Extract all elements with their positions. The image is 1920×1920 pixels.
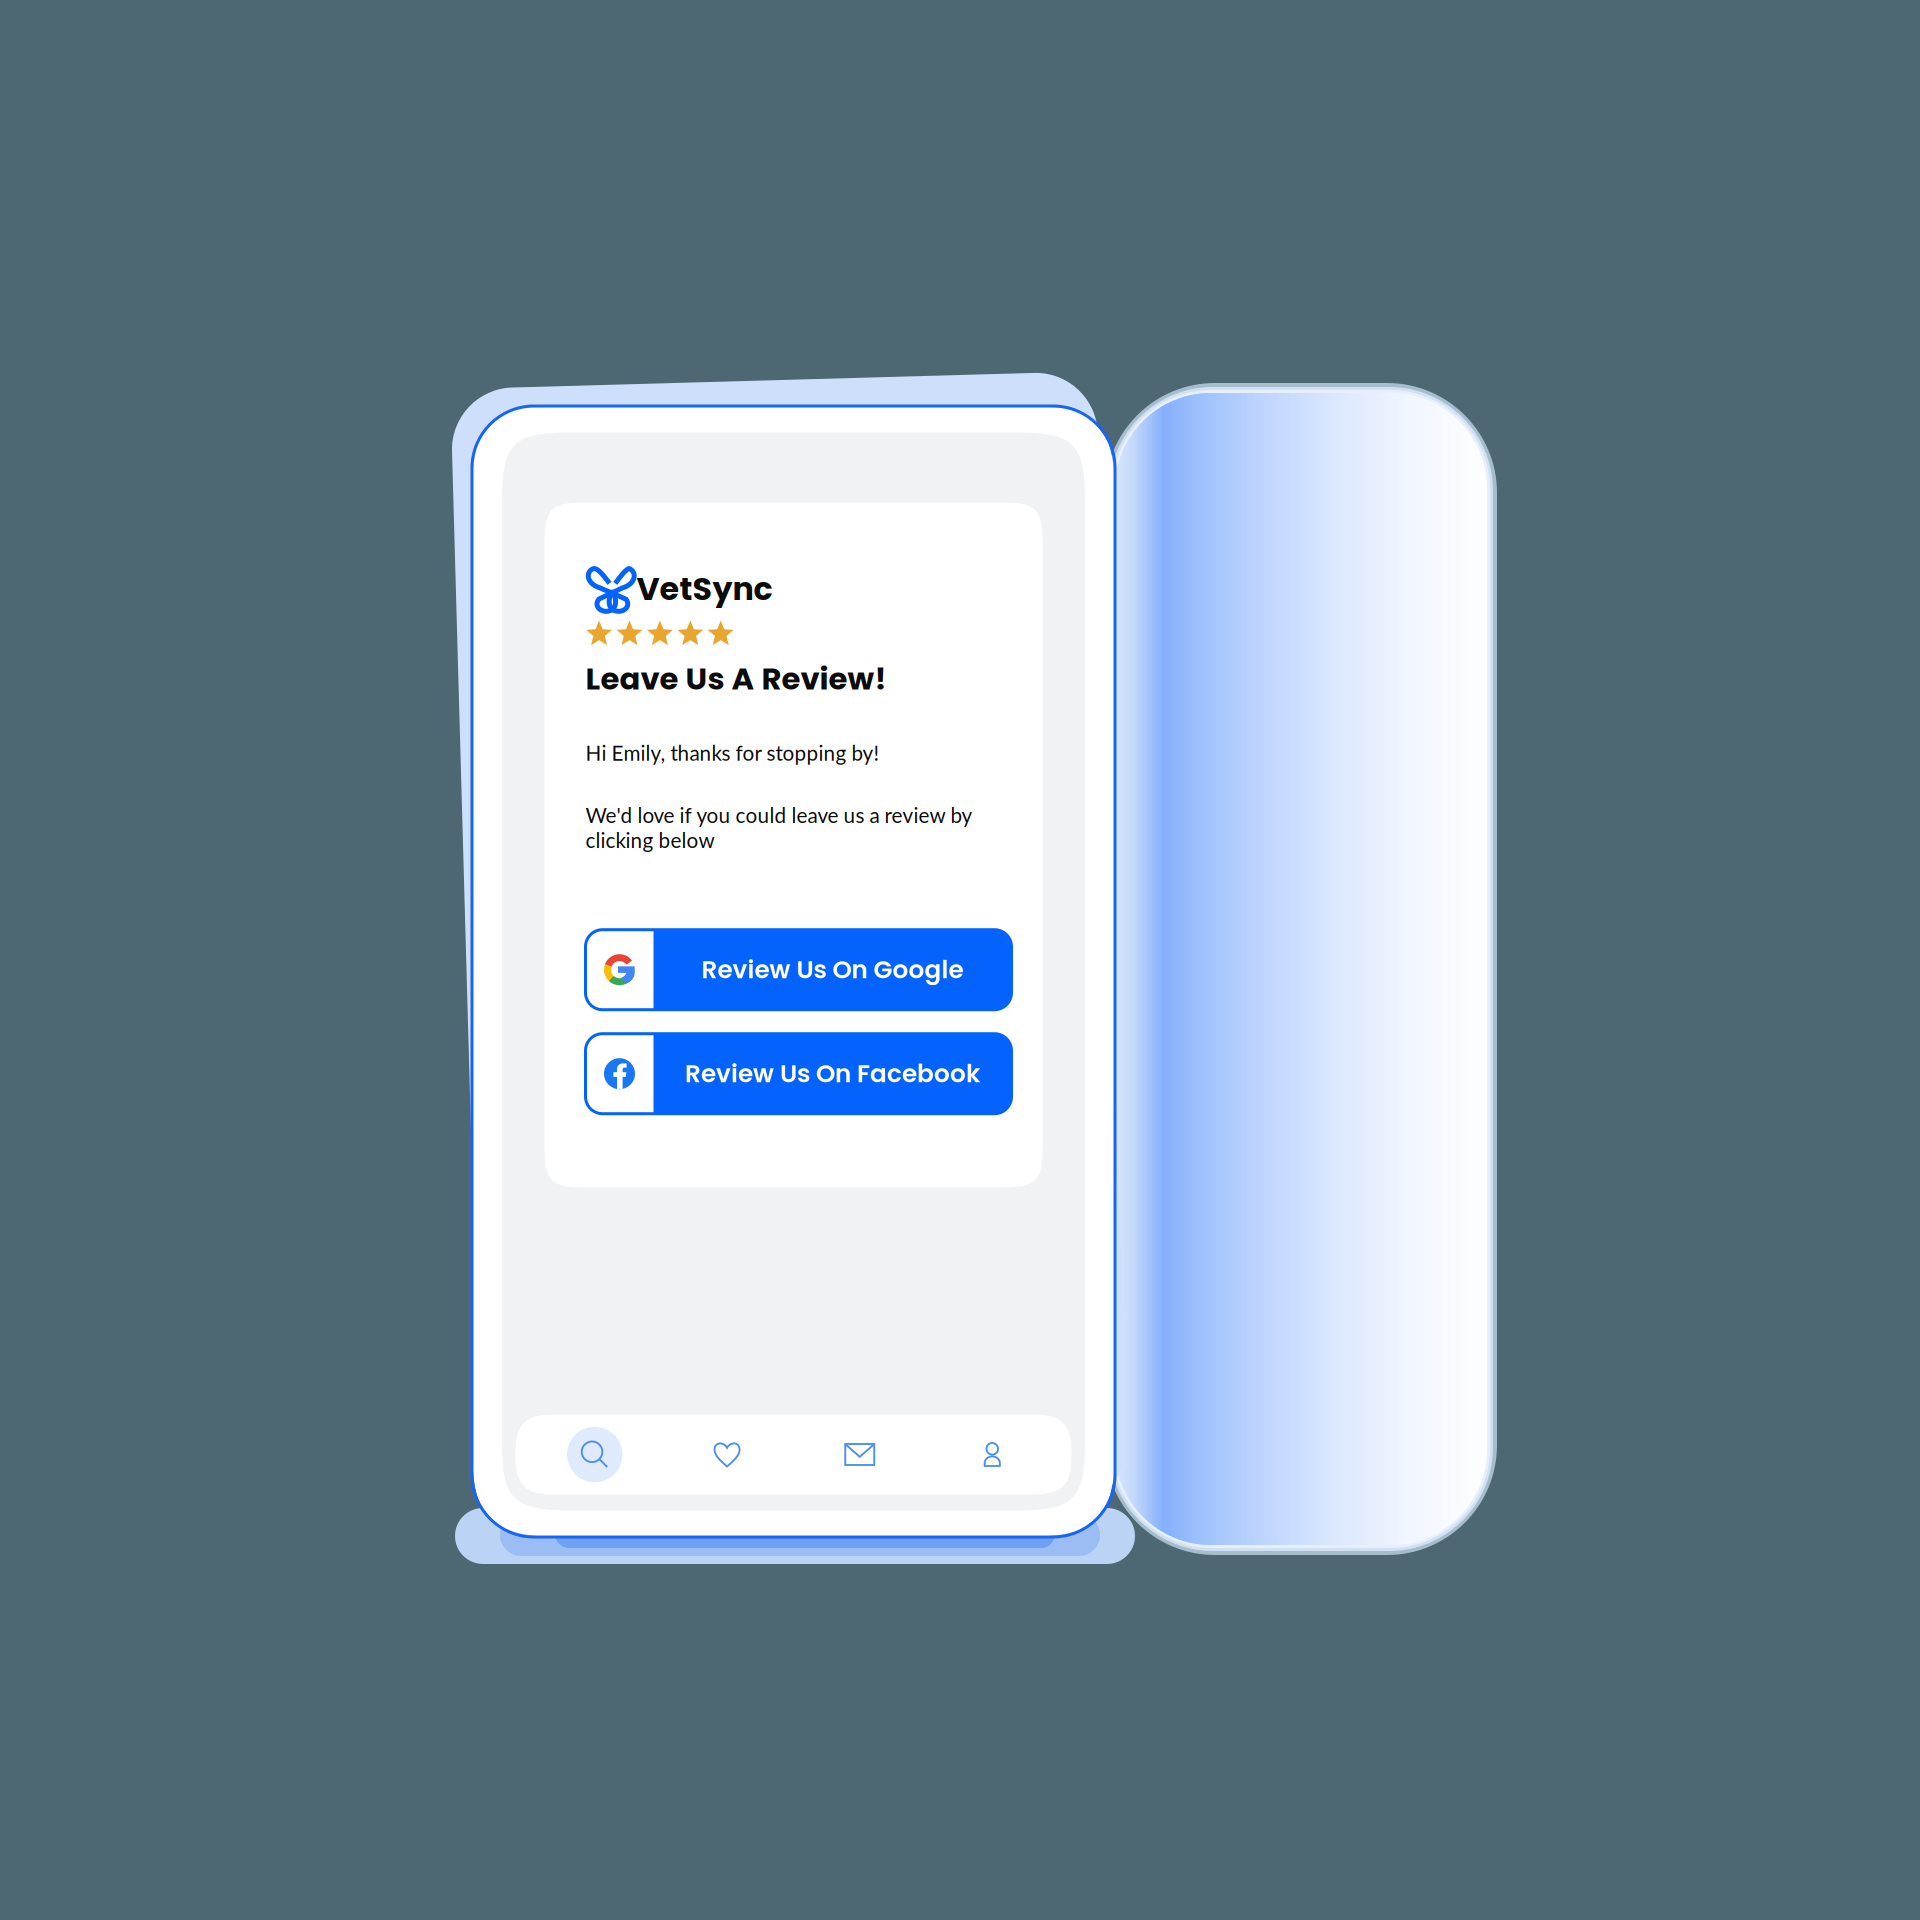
- button[interactable]: Search: [528, 1414, 661, 1494]
- button[interactable]: Review Us On Google: [585, 930, 1011, 1010]
- staticText: Hi Emily, thanks for stopping by!: [585, 740, 879, 765]
- staticText: Review Us On Facebook: [685, 1056, 980, 1091]
- button[interactable]: Profile: [926, 1414, 1058, 1494]
- staticText: We'd love if you could leave us a review…: [585, 803, 971, 852]
- button[interactable]: Favorites: [661, 1414, 793, 1494]
- button[interactable]: Messages: [793, 1414, 926, 1494]
- staticText: VetSync: [636, 567, 772, 611]
- staticText: Leave Us A Review!: [585, 657, 886, 700]
- button[interactable]: Review Us On Facebook: [585, 1034, 1011, 1114]
- staticText: Review Us On Google: [701, 952, 963, 987]
